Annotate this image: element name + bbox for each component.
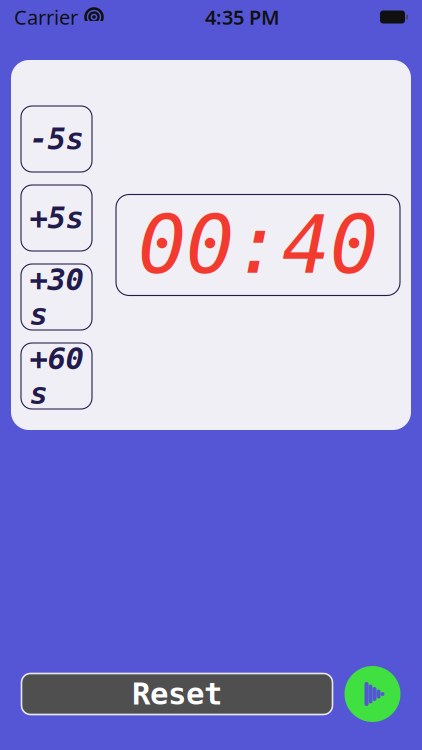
button[interactable]: +30s <box>21 264 92 330</box>
staticText: Carrier <box>14 4 78 30</box>
staticText: -5s <box>29 122 83 156</box>
button[interactable]: +60s <box>21 343 92 409</box>
button[interactable]: -5s <box>21 106 92 172</box>
staticText: +30s <box>29 262 83 332</box>
staticText: Reset <box>132 677 222 711</box>
staticText: 00:40 <box>138 200 378 290</box>
staticText: 4:35 PM <box>205 4 280 30</box>
button[interactable]: Start timer <box>344 666 400 722</box>
button[interactable]: Reset <box>21 673 332 714</box>
staticText: +5s <box>29 201 83 235</box>
staticText: +60s <box>29 341 83 411</box>
button[interactable]: +5s <box>21 185 92 251</box>
